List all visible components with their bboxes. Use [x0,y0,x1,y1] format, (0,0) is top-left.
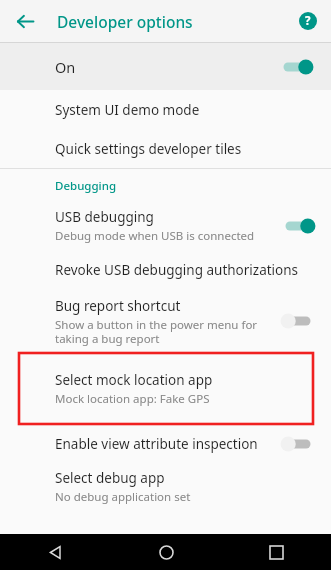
button[interactable]: Enable view attribute inspection [0,424,331,463]
staticText: Select debug app [55,469,165,487]
button[interactable]: Home [111,534,221,570]
button[interactable]: Quick settings developer tiles [0,129,331,168]
staticText: On [55,57,277,77]
button[interactable]: Toggle off [279,432,317,456]
staticText: Quick settings developer tiles [55,140,242,158]
button[interactable]: Bug report shortcut [0,290,331,352]
button[interactable]: USB debugging [0,202,331,250]
staticText: Mock location app: Fake GPS [55,391,210,407]
button[interactable]: Help [292,5,324,37]
staticText: Show a button in the power menu for taki… [55,317,258,346]
button[interactable]: Toggle on [279,214,317,238]
staticText: Select mock location app [55,371,213,389]
button[interactable]: Toggle on [277,55,315,79]
button[interactable]: On [0,43,331,90]
staticText: Debugging [55,178,117,194]
staticText: USB debugging [55,208,154,226]
staticText: Revoke USB debugging authorizations [55,261,299,279]
staticText: Bug report shortcut [55,297,181,315]
staticText: Developer options [57,11,193,32]
button[interactable]: Back [0,534,111,570]
button[interactable]: Select mock location app [19,353,313,424]
staticText: No debug application set [55,489,191,505]
button[interactable]: Revoke USB debugging authorizations [0,250,331,290]
button[interactable]: Toggle off [279,309,317,333]
button[interactable]: Back [8,4,42,38]
staticText: ? [305,13,311,29]
staticText: Debug mode when USB is connected [55,228,255,244]
staticText: Enable view attribute inspection [55,435,279,453]
button[interactable]: System UI demo mode [0,90,331,129]
button[interactable]: Select debug app [0,463,331,511]
button[interactable]: Recents [221,534,331,570]
staticText: System UI demo mode [55,101,200,119]
